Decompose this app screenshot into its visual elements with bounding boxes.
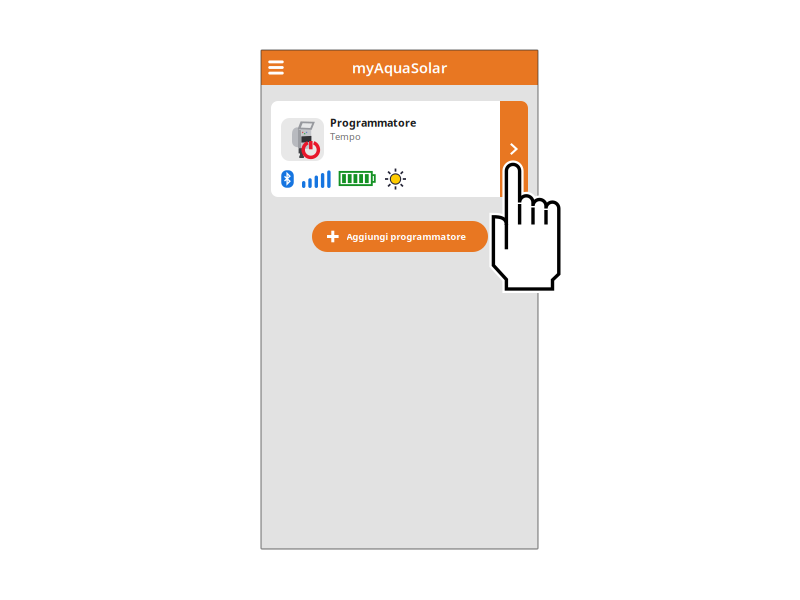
staticText: Tempo bbox=[330, 130, 361, 143]
button[interactable]: Menu bbox=[261, 50, 291, 85]
button[interactable]: Programmatore bbox=[271, 101, 500, 197]
staticText: Programmatore bbox=[330, 115, 416, 130]
staticText: myAquaSolar bbox=[352, 58, 447, 77]
button[interactable]: Aggiungi programmatore bbox=[312, 221, 488, 252]
button[interactable]: Open programmer details bbox=[500, 101, 528, 197]
staticText: Aggiungi programmatore bbox=[347, 230, 467, 243]
